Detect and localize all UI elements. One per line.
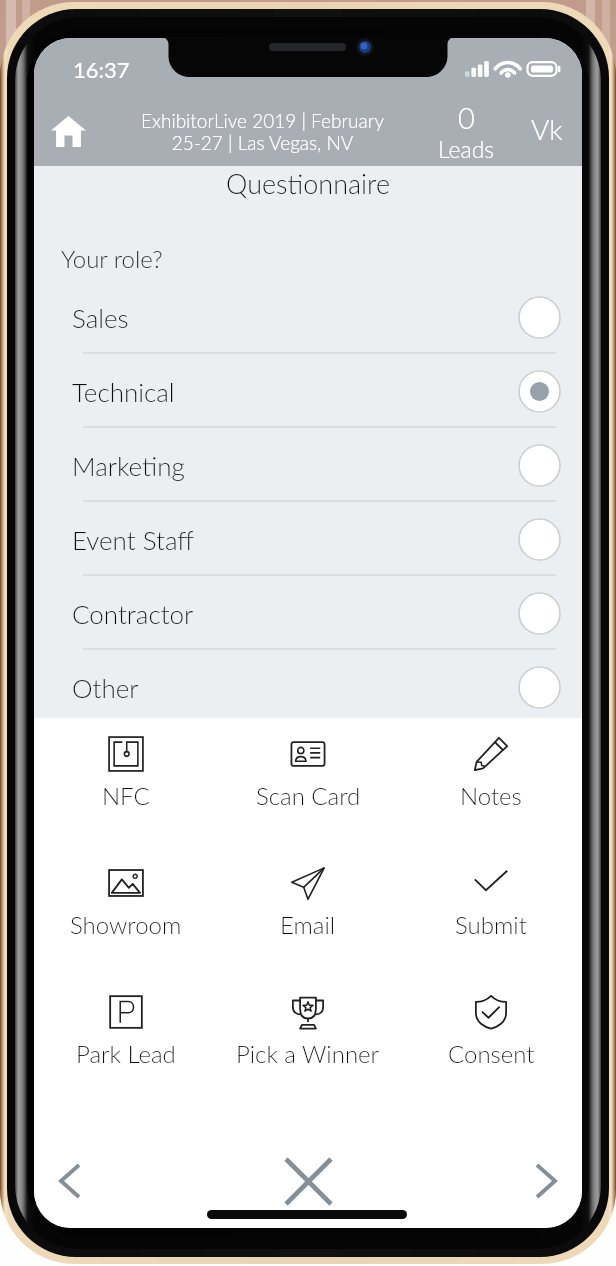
button[interactable]: Sales <box>34 280 582 354</box>
staticText: Marketing <box>72 450 185 481</box>
button[interactable]: NFC <box>35 727 217 810</box>
staticText: Submit <box>455 910 527 939</box>
staticText: Contractor <box>72 598 194 629</box>
button[interactable]: Pick a Winner <box>217 985 399 1068</box>
button[interactable]: Other <box>34 650 582 724</box>
staticText: ExhibitorLive 2019 | February 25-27 | La… <box>138 109 387 154</box>
staticText: Park Lead <box>76 1039 176 1068</box>
staticText: Sales <box>72 302 129 333</box>
staticText: Email <box>280 910 336 939</box>
button[interactable]: Previous <box>39 1150 101 1212</box>
button[interactable]: Vk <box>521 112 573 154</box>
button[interactable]: Showroom <box>35 856 217 939</box>
button[interactable]: Close <box>273 1146 343 1216</box>
button[interactable]: Notes <box>400 727 582 810</box>
staticText: Notes <box>460 781 522 810</box>
staticText: Other <box>72 672 139 703</box>
staticText: Leads <box>438 135 495 163</box>
staticText: Pick a Winner <box>236 1039 380 1068</box>
button[interactable]: Email <box>217 856 399 939</box>
button[interactable]: Marketing <box>34 428 582 502</box>
staticText: Questionnaire <box>34 167 582 199</box>
staticText: Event Staff <box>72 524 195 555</box>
staticText: Technical <box>72 376 175 407</box>
button[interactable]: Contractor <box>34 576 582 650</box>
staticText: Consent <box>448 1039 535 1068</box>
staticText: Scan Card <box>256 781 361 810</box>
button[interactable]: Park Lead <box>35 985 217 1068</box>
staticText: 0 <box>458 100 475 135</box>
staticText: NFC <box>102 781 150 810</box>
staticText: 16:37 <box>73 56 130 82</box>
button[interactable]: Home <box>40 100 97 162</box>
button[interactable]: Submit <box>400 856 582 939</box>
button[interactable]: Event Staff <box>34 502 582 576</box>
button[interactable]: Scan Card <box>217 727 399 810</box>
button[interactable]: Consent <box>400 985 582 1068</box>
button[interactable]: Technical <box>34 354 582 428</box>
staticText: Your role? <box>61 244 163 273</box>
button[interactable]: Next <box>515 1150 577 1212</box>
staticText: Showroom <box>70 910 182 939</box>
button[interactable]: 0 <box>432 100 500 163</box>
staticText: Vk <box>531 112 563 146</box>
